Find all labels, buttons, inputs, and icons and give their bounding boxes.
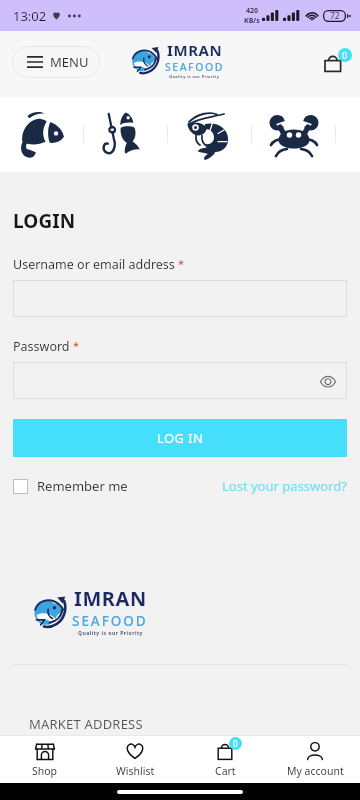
button[interactable]: 0: [180, 736, 270, 783]
staticText: LOG IN: [157, 429, 204, 447]
staticText: 13:02: [13, 7, 47, 25]
staticText: IMRAN: [74, 585, 147, 612]
staticText: 0: [342, 49, 348, 61]
staticText: Quality is our Priority: [169, 74, 220, 79]
button[interactable]: My account: [270, 736, 360, 783]
button[interactable]: Wishlist: [90, 736, 180, 783]
staticText: 72: [330, 10, 340, 22]
staticText: 420: [246, 6, 259, 16]
button[interactable]: Lost your password?: [222, 477, 347, 495]
staticText: Wishlist: [116, 764, 155, 778]
button[interactable]: Crab: [252, 97, 336, 172]
button[interactable]: Remember me: [13, 477, 128, 495]
button[interactable]: Show password: [13, 362, 347, 399]
button[interactable]: [13, 280, 347, 317]
staticText: *: [178, 256, 185, 271]
staticText: Quality is our Priority: [78, 630, 143, 637]
button[interactable]: Show password: [318, 371, 338, 391]
staticText: IMRAN: [167, 40, 223, 60]
button[interactable]: LOG IN: [13, 419, 347, 457]
button[interactable]: Shrimp: [168, 97, 252, 172]
staticText: SEAFOOD: [72, 612, 148, 630]
staticText: My account: [287, 764, 344, 778]
staticText: Lost your password?: [222, 477, 347, 495]
staticText: Password: [13, 338, 70, 355]
button[interactable]: Fish: [0, 97, 84, 172]
staticText: *: [73, 338, 80, 353]
staticText: KB/s: [244, 16, 260, 26]
button[interactable]: Shop: [0, 736, 90, 783]
button[interactable]: Shopping cart: [320, 47, 350, 77]
staticText: SEAFOOD: [165, 60, 224, 74]
button[interactable]: MENU: [12, 46, 100, 78]
staticText: Shop: [32, 764, 58, 778]
button[interactable]: Fishing: [84, 97, 168, 172]
staticText: MENU: [50, 53, 89, 71]
staticText: Username or email address: [13, 256, 175, 273]
staticText: Remember me: [37, 477, 128, 495]
staticText: MARKET ADDRESS: [29, 715, 143, 733]
staticText: 0: [233, 738, 238, 749]
staticText: Cart: [215, 764, 236, 778]
staticText: LOGIN: [13, 208, 76, 234]
